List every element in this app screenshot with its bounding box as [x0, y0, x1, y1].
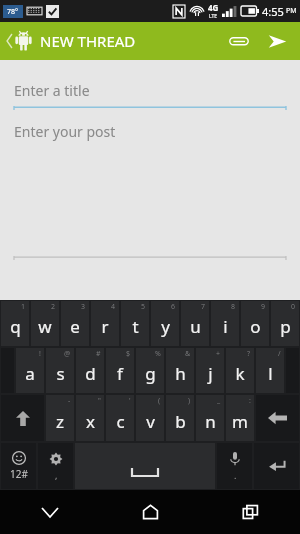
staticText: j — [208, 362, 213, 385]
staticText: f — [117, 362, 123, 385]
staticText: p — [280, 315, 291, 338]
staticText: 7 — [201, 302, 206, 312]
staticText: n — [205, 410, 216, 433]
staticText: ? — [247, 349, 251, 359]
button[interactable]: Send — [258, 22, 296, 60]
button[interactable]: 9 — [241, 301, 269, 346]
staticText: u — [190, 315, 201, 338]
staticText: Enter a title — [14, 81, 90, 100]
staticText: x — [86, 410, 95, 433]
staticText: : — [249, 396, 251, 406]
button[interactable]: Shift — [1, 395, 44, 441]
button[interactable]: _ — [196, 395, 224, 441]
button[interactable]: ) — [166, 395, 194, 441]
staticText: ' — [129, 396, 131, 406]
staticText: y — [161, 315, 170, 338]
button[interactable]: 2 — [31, 301, 59, 346]
staticText: @ — [64, 349, 71, 359]
staticText: 0 — [291, 302, 296, 312]
staticText: r — [101, 315, 109, 338]
button[interactable]: - — [46, 395, 74, 441]
staticText: 4 — [111, 302, 116, 312]
button[interactable]: Home — [100, 490, 200, 534]
staticText: NEW THREAD — [40, 31, 136, 51]
button[interactable]: Backspace — [256, 395, 299, 441]
staticText: # — [96, 349, 101, 359]
staticText: 2 — [51, 302, 56, 312]
button[interactable]: 8 — [211, 301, 239, 346]
button[interactable]: 4 — [91, 301, 119, 346]
button[interactable]: ? — [226, 348, 254, 393]
staticText: & — [185, 349, 191, 359]
staticText: " — [98, 396, 101, 406]
button[interactable]: 3 — [61, 301, 89, 346]
staticText: i — [223, 315, 228, 338]
staticText: ( — [158, 396, 161, 406]
button[interactable]: Symbols — [1, 443, 36, 489]
staticText: 4G — [208, 2, 219, 13]
staticText: k — [235, 362, 245, 385]
staticText: 3 — [81, 302, 86, 312]
staticText: LTE — [209, 13, 218, 20]
staticText: m — [232, 410, 248, 433]
staticText: g — [145, 362, 156, 385]
button[interactable]: ' — [106, 395, 134, 441]
staticText: 6 — [171, 302, 176, 312]
staticText: % — [155, 349, 161, 359]
button[interactable]: @ — [46, 348, 74, 393]
button[interactable]: Hide keyboard — [0, 490, 100, 534]
button[interactable]: " — [76, 395, 104, 441]
staticText: w — [38, 315, 52, 338]
staticText: e — [70, 315, 80, 338]
button[interactable]: ( — [136, 395, 164, 441]
staticText: v — [146, 410, 155, 433]
button[interactable]: 7 — [181, 301, 209, 346]
staticText: o — [250, 315, 261, 338]
staticText: 4:55 — [262, 4, 284, 19]
staticText: . — [234, 469, 237, 481]
staticText: 78° — [7, 7, 19, 17]
button[interactable]: Attach — [220, 22, 258, 60]
staticText: d — [85, 362, 96, 385]
staticText: + — [216, 349, 221, 359]
staticText: PM — [286, 6, 297, 16]
staticText: $ — [126, 349, 131, 359]
button[interactable]: 0 — [271, 301, 299, 346]
staticText: a — [25, 362, 35, 385]
button[interactable]: : — [226, 395, 254, 441]
staticText: - — [68, 396, 71, 406]
staticText: l — [268, 362, 273, 385]
staticText: ! — [39, 349, 41, 359]
button[interactable]: Settings — [38, 443, 73, 489]
button[interactable]: Back — [4, 31, 34, 51]
button[interactable]: 1 — [1, 301, 29, 346]
staticText: _ — [217, 396, 221, 406]
button[interactable]: / — [256, 348, 284, 393]
button[interactable]: # — [76, 348, 104, 393]
staticText: c — [116, 410, 125, 433]
staticText: t — [132, 315, 139, 338]
button[interactable]: Space — [75, 443, 215, 489]
staticText: 5 — [141, 302, 146, 312]
staticText: ) — [188, 396, 191, 406]
button[interactable]: ! — [16, 348, 44, 393]
button[interactable]: $ — [106, 348, 134, 393]
staticText: , — [55, 469, 58, 481]
staticText: h — [175, 362, 186, 385]
button[interactable]: Enter — [254, 443, 299, 489]
button[interactable]: % — [136, 348, 164, 393]
button[interactable]: & — [166, 348, 194, 393]
staticText: 12# — [10, 467, 28, 481]
staticText: q — [10, 315, 21, 338]
button[interactable]: Voice input — [217, 443, 252, 489]
staticText: 1 — [21, 302, 26, 312]
staticText: z — [56, 410, 64, 433]
button[interactable]: 6 — [151, 301, 179, 346]
button[interactable]: + — [196, 348, 224, 393]
staticText: s — [56, 362, 65, 385]
button[interactable]: 5 — [121, 301, 149, 346]
staticText: 8 — [231, 302, 236, 312]
button[interactable]: Recents — [200, 490, 300, 534]
